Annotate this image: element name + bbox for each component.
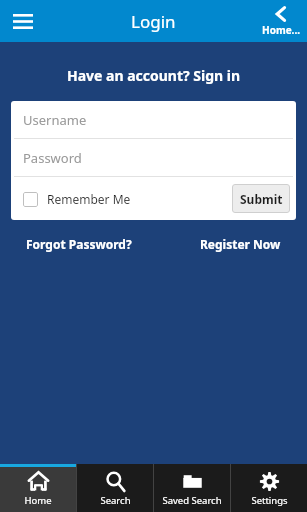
staticText: Have an account? Sign in <box>0 66 307 85</box>
button[interactable]: Remember Me <box>21 187 133 211</box>
button[interactable]: Username <box>11 101 296 138</box>
button[interactable]: Password <box>11 139 296 176</box>
button[interactable]: Search <box>77 464 153 512</box>
staticText: Username <box>23 111 87 129</box>
staticText: Home... <box>262 23 301 37</box>
button[interactable]: Submit <box>232 184 290 213</box>
staticText: Settings <box>251 494 288 507</box>
button[interactable]: Home... <box>255 0 307 42</box>
staticText: Forgot Password? <box>26 236 132 252</box>
staticText: Register Now <box>200 236 281 252</box>
staticText: Home <box>24 494 52 507</box>
button[interactable]: Settings <box>231 464 307 512</box>
button[interactable]: Menu <box>6 4 40 38</box>
staticText: Password <box>23 149 82 167</box>
staticText: Submit <box>240 191 283 207</box>
staticText: Saved Search <box>162 494 222 507</box>
staticText: Search <box>100 494 131 507</box>
button[interactable]: Home <box>0 464 76 512</box>
staticText: Login <box>131 10 176 33</box>
button[interactable]: Forgot Password? <box>22 233 136 255</box>
staticText: Remember Me <box>47 191 131 207</box>
button[interactable]: Register Now <box>196 233 285 255</box>
button[interactable]: Saved Search <box>154 464 230 512</box>
